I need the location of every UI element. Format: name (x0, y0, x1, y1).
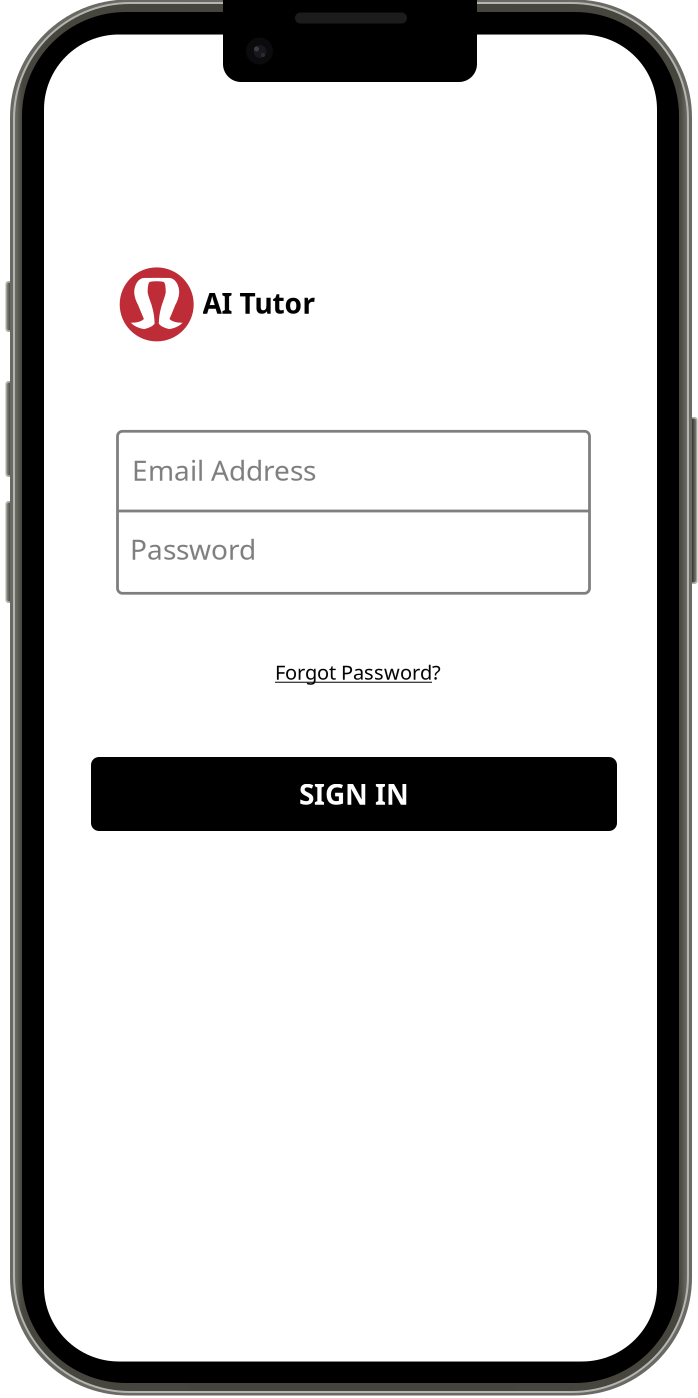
button[interactable]: SIGN IN (91, 757, 617, 831)
staticText: Password (130, 530, 256, 568)
button[interactable]: Forgot Password? (275, 659, 441, 685)
staticText: AI Tutor (202, 284, 315, 322)
staticText: Email Address (132, 451, 316, 489)
staticText: SIGN IN (299, 775, 409, 813)
staticText: Forgot Password? (275, 659, 441, 685)
